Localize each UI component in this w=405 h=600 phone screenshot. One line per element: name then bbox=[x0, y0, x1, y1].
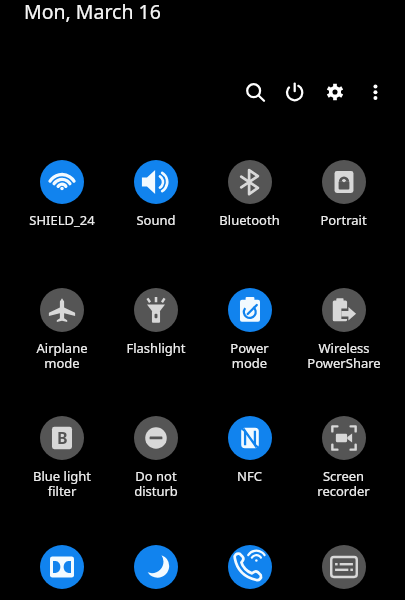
button[interactable]: Power off bbox=[280, 77, 310, 107]
button[interactable]: Bluetooth bbox=[203, 160, 296, 236]
staticText: Mon, March 16 bbox=[24, 0, 161, 25]
staticText: Sound bbox=[136, 211, 176, 229]
button[interactable]: Sound bbox=[109, 160, 202, 236]
staticText: B bbox=[57, 427, 68, 449]
button[interactable]: Subtitles bbox=[297, 545, 390, 600]
staticText: Airplane mode bbox=[36, 339, 88, 372]
button[interactable]: Flashlight bbox=[109, 288, 202, 364]
staticText: Do not disturb bbox=[134, 467, 178, 500]
staticText: Wireless PowerShare bbox=[307, 339, 381, 372]
button[interactable]: More options bbox=[360, 77, 390, 107]
staticText: Portrait bbox=[320, 211, 367, 229]
staticText: Screen recorder bbox=[317, 467, 370, 500]
button[interactable]: Settings bbox=[320, 77, 350, 107]
staticText: Power mode bbox=[230, 339, 269, 372]
button[interactable]: Airplane mode bbox=[15, 288, 108, 364]
button[interactable]: SHIELD_24 bbox=[15, 160, 108, 236]
button[interactable]: Screen recorder bbox=[297, 416, 390, 492]
button[interactable]: Portrait bbox=[297, 160, 390, 236]
staticText: Bluetooth bbox=[219, 211, 280, 229]
button[interactable]: Do not disturb bbox=[109, 416, 202, 492]
button[interactable]: Search bbox=[240, 77, 270, 107]
staticText: SHIELD_24 bbox=[29, 211, 95, 229]
staticText: NFC bbox=[237, 467, 262, 485]
staticText: Blue light filter bbox=[33, 467, 91, 500]
button[interactable]: Night mode bbox=[109, 545, 202, 600]
button[interactable]: Power mode bbox=[203, 288, 296, 364]
button[interactable]: Wi-Fi calling bbox=[203, 545, 296, 600]
button[interactable]: NFC bbox=[203, 416, 296, 492]
button[interactable]: Blue light filter bbox=[15, 416, 108, 492]
staticText: Flashlight bbox=[126, 339, 186, 357]
button[interactable]: Wireless PowerShare bbox=[297, 288, 390, 364]
button[interactable]: Dolby Atmos bbox=[15, 545, 108, 600]
